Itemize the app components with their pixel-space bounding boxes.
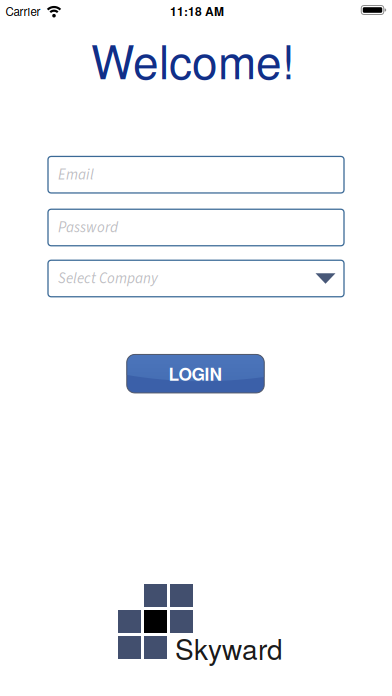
button[interactable]: Select Company [48,260,344,297]
staticText: Carrier [5,3,40,19]
button[interactable]: LOGIN [127,354,264,393]
staticText: Skyward [175,628,283,668]
staticText: LOGIN [168,361,222,386]
staticText: 11:18 AM [170,2,224,20]
button[interactable]: Email [48,156,344,193]
staticText: Password [58,217,118,238]
staticText: Select Company [58,268,158,289]
button[interactable]: Password [48,209,344,246]
staticText: Email [58,164,94,185]
staticText: Welcome! [91,27,295,92]
